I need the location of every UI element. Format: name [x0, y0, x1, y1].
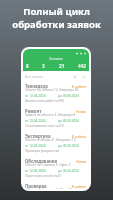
staticText: В работе — [72, 134, 87, 139]
staticText: Проверка документов — [25, 149, 60, 153]
staticText: 3 — [42, 63, 45, 69]
staticText: Заявки — [23, 56, 89, 61]
staticText: до 30.04.2024 — [58, 94, 79, 98]
staticText: Объект на Ленина 12. Квартира 45 — [25, 88, 79, 92]
staticText: Ремонт — [25, 108, 42, 114]
button[interactable]: Проверка — [23, 182, 89, 189]
staticText: Полный цикл — [23, 5, 90, 18]
staticText: Все заявки — [25, 74, 43, 79]
staticText: Новая — [76, 159, 87, 164]
staticText: от 12.04.2024 — [25, 94, 46, 98]
staticText: до 30.04.2024 — [58, 144, 79, 148]
staticText: от 12.04.2024 — [25, 119, 46, 123]
staticText: Проверка — [25, 183, 47, 189]
staticText: Согласование смет №212 — [25, 124, 65, 128]
staticText: от 12.04.2024 — [25, 144, 46, 148]
button[interactable]: Технадзор — [23, 82, 89, 107]
staticText: Объект на Садовой 5. Офис 2 — [25, 163, 71, 167]
staticText: В работе — [72, 84, 87, 89]
staticText: Новая — [76, 109, 87, 114]
staticText: Объект на Невском 7. Офис 19 — [25, 188, 73, 189]
staticText: Экспертиза — [25, 133, 51, 139]
staticText: обработки заявок — [12, 18, 101, 31]
staticText: Задача на объекте 3. Квартира 8 — [25, 113, 76, 117]
staticText: Объект на Мира 21. Квартира 12 — [25, 138, 76, 142]
staticText: Подготовка отчёта №51 — [25, 174, 62, 178]
button[interactable]: Ремонт — [23, 107, 89, 132]
staticText: от 12.04.2024 — [25, 169, 46, 173]
button[interactable]: Обследование — [23, 157, 89, 182]
staticText: до 30.04.2024 — [58, 169, 79, 173]
staticText: В работе — [72, 184, 87, 189]
button[interactable]: Filter — [81, 74, 87, 80]
staticText: 442 — [78, 63, 86, 69]
staticText: Выполнение работ №390 — [25, 99, 64, 103]
button[interactable]: Sort — [72, 74, 78, 80]
staticText: Обследование — [25, 158, 58, 164]
button[interactable]: Экспертиза — [23, 132, 89, 157]
staticText: 8 — [26, 63, 29, 69]
staticText: до 30.04.2024 — [58, 119, 79, 123]
staticText: Технадзор — [25, 83, 48, 89]
staticText: 21 — [59, 63, 65, 69]
